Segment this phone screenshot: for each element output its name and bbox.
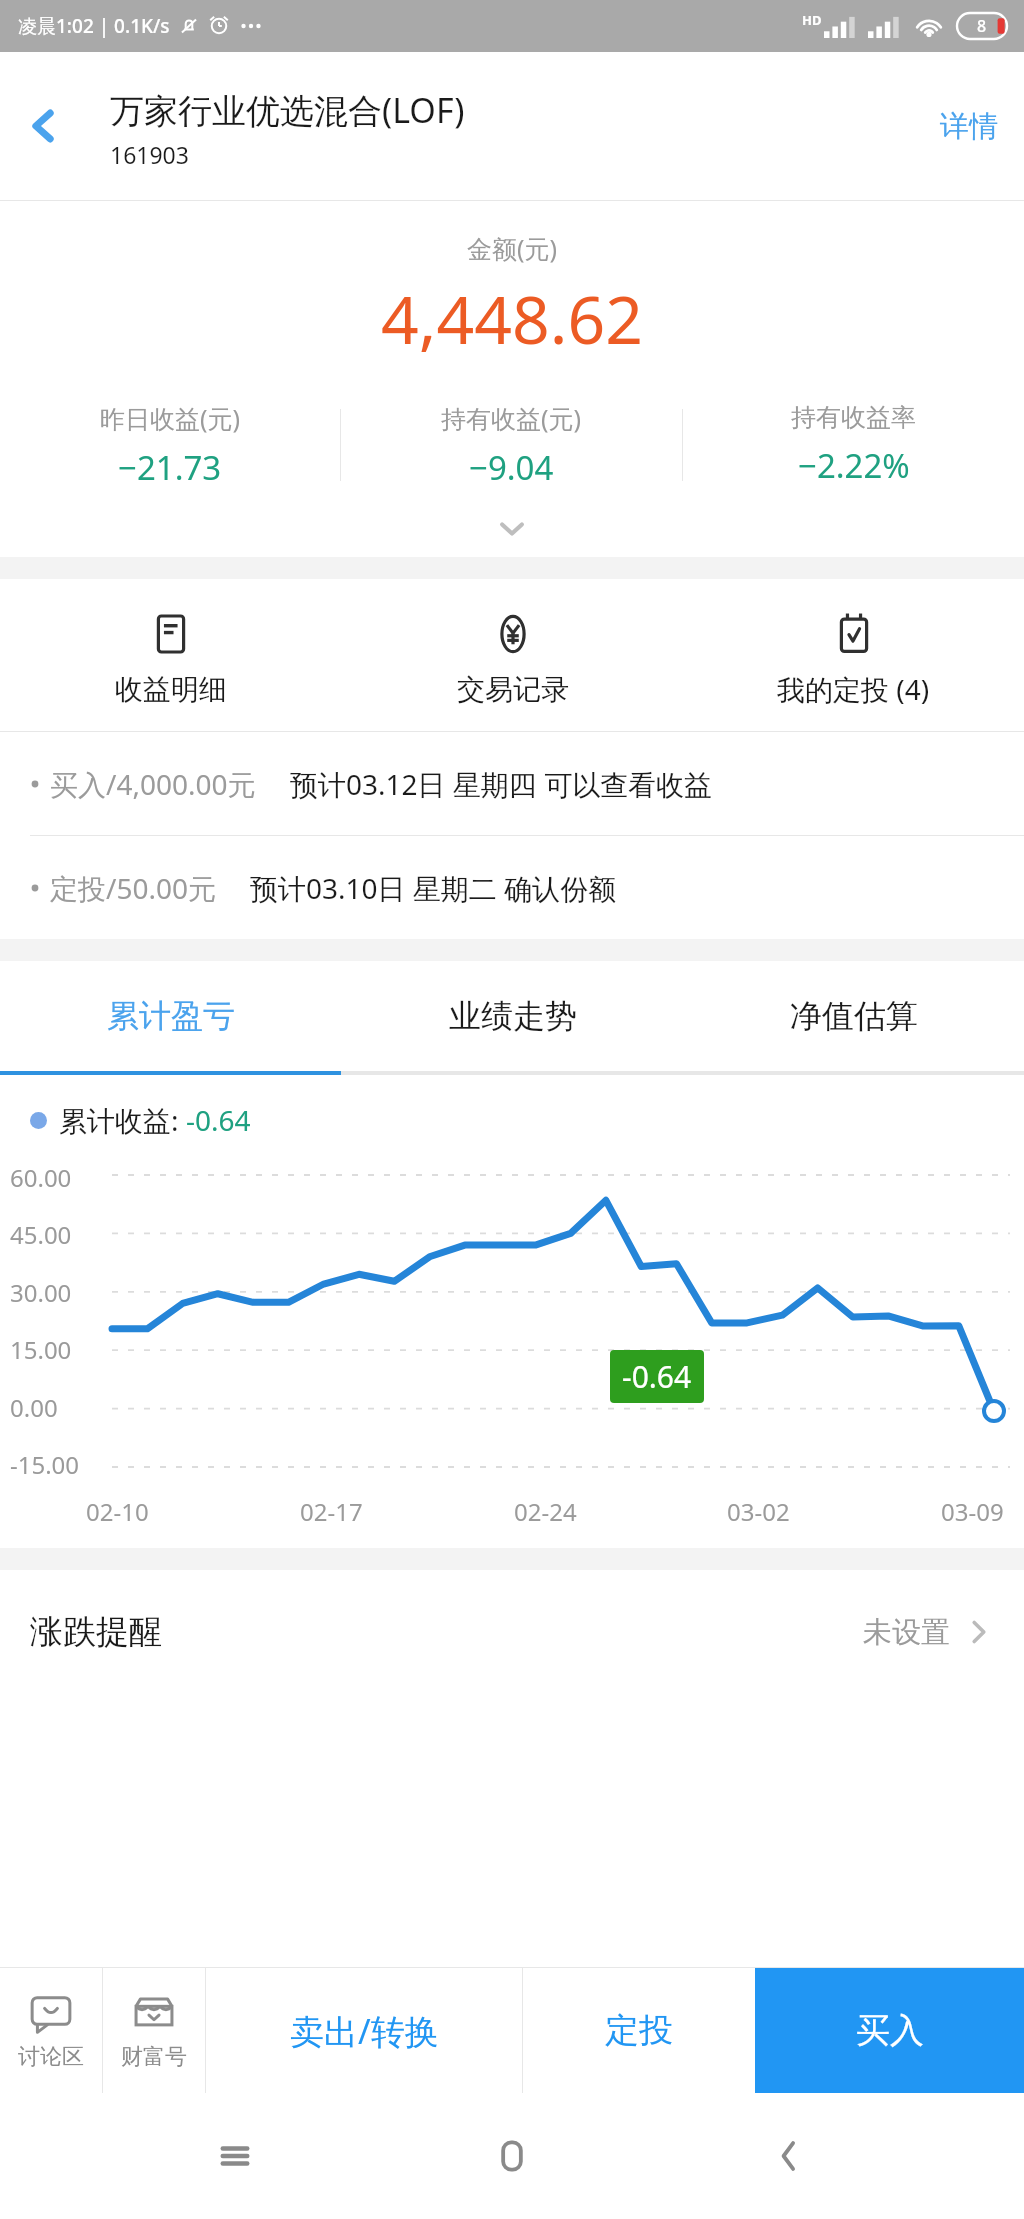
- staticText: -0.64: [622, 1356, 692, 1397]
- button[interactable]: 业绩走势: [342, 961, 683, 1071]
- staticText: 未设置: [863, 1614, 950, 1651]
- staticText: 卖出/转换: [290, 2008, 439, 2054]
- button[interactable]: 财富号: [103, 1968, 205, 2093]
- staticText: 30.00: [10, 1276, 72, 1309]
- staticText: 凌晨1:02 | 0.1K/s: [18, 13, 170, 39]
- staticText: 讨论区: [18, 2043, 84, 2071]
- staticText: 持有收益(元): [441, 401, 582, 435]
- staticText: 02-10: [86, 1495, 149, 1528]
- staticText: 15.00: [10, 1333, 72, 1366]
- button[interactable]: 定投: [523, 1968, 755, 2093]
- button[interactable]: 涨跌提醒: [0, 1570, 1024, 1694]
- staticText: 03-02: [727, 1495, 790, 1528]
- staticText: 收益明细: [115, 672, 227, 707]
- staticText: 4,448.62: [0, 273, 1024, 363]
- staticText: 买入: [856, 2009, 924, 2052]
- staticText: 02-24: [514, 1495, 577, 1528]
- staticText: -0.64: [186, 1101, 251, 1139]
- staticText: 我的定投 (4): [777, 670, 930, 708]
- staticText: 买入/4,000.00元: [50, 765, 256, 803]
- staticText: 预计03.10日 星期二 确认份额: [250, 869, 617, 907]
- staticText: 45.00: [10, 1218, 72, 1251]
- staticText: 定投: [605, 2009, 673, 2052]
- staticText: −21.73: [118, 445, 222, 490]
- staticText: 累计收益:: [59, 1101, 186, 1139]
- button[interactable]: 我的定投 (4): [683, 579, 1024, 731]
- staticText: −9.04: [469, 445, 554, 490]
- staticText: 财富号: [121, 2043, 187, 2071]
- staticText: 0.00: [10, 1391, 58, 1424]
- staticText: −2.22%: [798, 443, 910, 488]
- staticText: 161903: [110, 139, 189, 170]
- staticText: 定投/50.00元: [50, 869, 216, 907]
- button[interactable]: 净值估算: [683, 961, 1024, 1071]
- staticText: 业绩走势: [449, 996, 577, 1036]
- button[interactable]: Recent apps: [193, 2114, 277, 2198]
- staticText: -15.00: [10, 1448, 80, 1481]
- staticText: 交易记录: [457, 672, 569, 707]
- button[interactable]: 累计盈亏: [0, 961, 342, 1071]
- button[interactable]: 买入: [755, 1968, 1024, 2093]
- button[interactable]: 卖出/转换: [206, 1968, 522, 2093]
- staticText: 万家行业优选混合(LOF): [110, 87, 465, 133]
- staticText: 昨日收益(元): [100, 401, 241, 435]
- button[interactable]: 详情: [930, 96, 1008, 157]
- staticText: 02-17: [300, 1495, 363, 1528]
- button[interactable]: 讨论区: [0, 1968, 102, 2093]
- button[interactable]: Home: [470, 2114, 554, 2198]
- staticText: 累计盈亏: [107, 996, 235, 1036]
- staticText: HD: [802, 11, 822, 29]
- staticText: 持有收益率: [791, 402, 916, 433]
- staticText: 详情: [940, 108, 998, 145]
- staticText: 金额(元): [0, 231, 1024, 265]
- staticText: 60.00: [10, 1161, 72, 1194]
- button[interactable]: 定投/50.00元: [0, 836, 1024, 939]
- staticText: 预计03.12日 星期四 可以查看收益: [290, 765, 713, 803]
- staticText: 03-09: [941, 1495, 1004, 1528]
- staticText: 8: [977, 15, 987, 37]
- staticText: 净值估算: [790, 996, 918, 1036]
- button[interactable]: Back: [747, 2114, 831, 2198]
- button[interactable]: 交易记录: [342, 579, 683, 731]
- staticText: 涨跌提醒: [30, 1611, 162, 1653]
- button[interactable]: 收益明细: [0, 579, 342, 731]
- button[interactable]: Back: [12, 95, 74, 157]
- button[interactable]: 买入/4,000.00元: [0, 732, 1024, 835]
